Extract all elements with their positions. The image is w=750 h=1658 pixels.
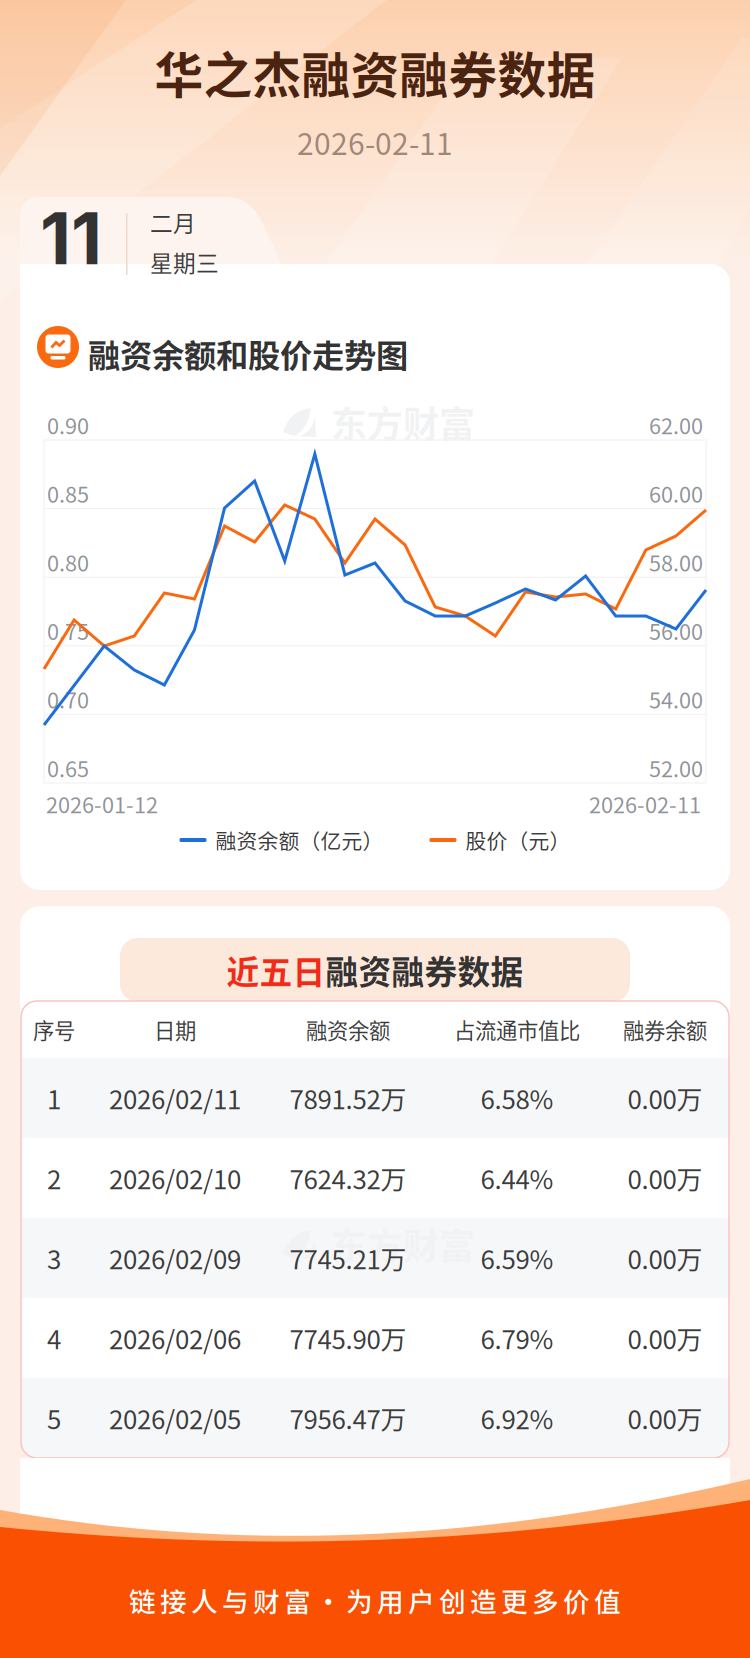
staticText: 股价（元） [465,825,570,855]
staticText: 0.00万 [627,1319,702,1357]
staticText: 60.00 [649,478,703,509]
staticText: 华之杰融资融券数据 [154,37,595,107]
staticText: 星期三 [150,245,219,278]
staticText: 6.79% [480,1319,553,1357]
staticText: 4 [47,1319,61,1357]
staticText: 62.00 [649,409,703,440]
staticText: 6.59% [480,1239,553,1277]
staticText: 2026-01-12 [46,788,158,819]
staticText: 11 [40,194,102,281]
button[interactable]: 融资余额（亿元） [179,821,383,859]
staticText: 7624.32万 [289,1159,406,1197]
staticText: 链接人与财富·为用户创造更多价值 [129,1581,621,1619]
staticText: 58.00 [649,546,703,578]
staticText: 0.00万 [627,1159,702,1197]
staticText: 2026/02/05 [109,1399,241,1437]
staticText: 2026/02/10 [109,1159,241,1197]
staticText: 近五日 [226,946,325,994]
staticText: 7745.21万 [289,1239,406,1277]
staticText: 融资余额（亿元） [215,825,383,855]
staticText: 2026-02-11 [589,788,701,819]
staticText: 0.00万 [627,1239,702,1277]
staticText: 占流通市值比 [454,1014,580,1045]
staticText: 序号 [33,1014,75,1045]
staticText: 52.00 [649,752,703,783]
staticText: 0.00万 [627,1399,702,1437]
staticText: 0.85 [47,478,89,509]
staticText: 2026/02/09 [109,1239,241,1277]
staticText: 日期 [154,1014,196,1045]
staticText: 7745.90万 [289,1319,406,1357]
staticText: 54.00 [649,683,703,715]
button[interactable]: 5 [21,1378,729,1458]
staticText: 东方财富 [331,396,475,448]
staticText: 东方财富 [331,1218,475,1270]
button[interactable]: 3 [21,1218,729,1298]
staticText: 56.00 [649,615,703,646]
staticText: 6.92% [480,1399,553,1437]
staticText: 5 [47,1399,61,1437]
staticText: 3 [47,1239,61,1277]
button[interactable]: 4 [21,1298,729,1378]
staticText: 0.75 [47,615,89,646]
staticText: 2026/02/06 [109,1319,241,1357]
button[interactable]: 2 [21,1138,729,1218]
button[interactable]: 股价（元） [429,821,570,859]
staticText: 融券余额 [623,1014,707,1045]
staticText: 融资余额和股价走势图 [88,330,408,377]
staticText: 融资融券数据 [325,946,523,994]
staticText: 0.00万 [627,1079,702,1117]
staticText: 2026-02-11 [297,120,453,164]
staticText: 7891.52万 [289,1079,406,1117]
staticText: 2 [47,1159,61,1197]
staticText: 0.70 [47,683,89,715]
staticText: 0.65 [47,752,89,783]
staticText: 0.80 [47,546,89,578]
staticText: 0.90 [47,409,89,440]
staticText: 2026/02/11 [109,1079,241,1117]
staticText: 二月 [150,206,196,238]
staticText: 7956.47万 [289,1399,406,1437]
button[interactable]: 1 [21,1058,729,1138]
staticText: 6.58% [480,1079,553,1117]
staticText: 1 [47,1079,61,1117]
staticText: 6.44% [480,1159,553,1197]
staticText: 融资余额 [306,1014,390,1045]
